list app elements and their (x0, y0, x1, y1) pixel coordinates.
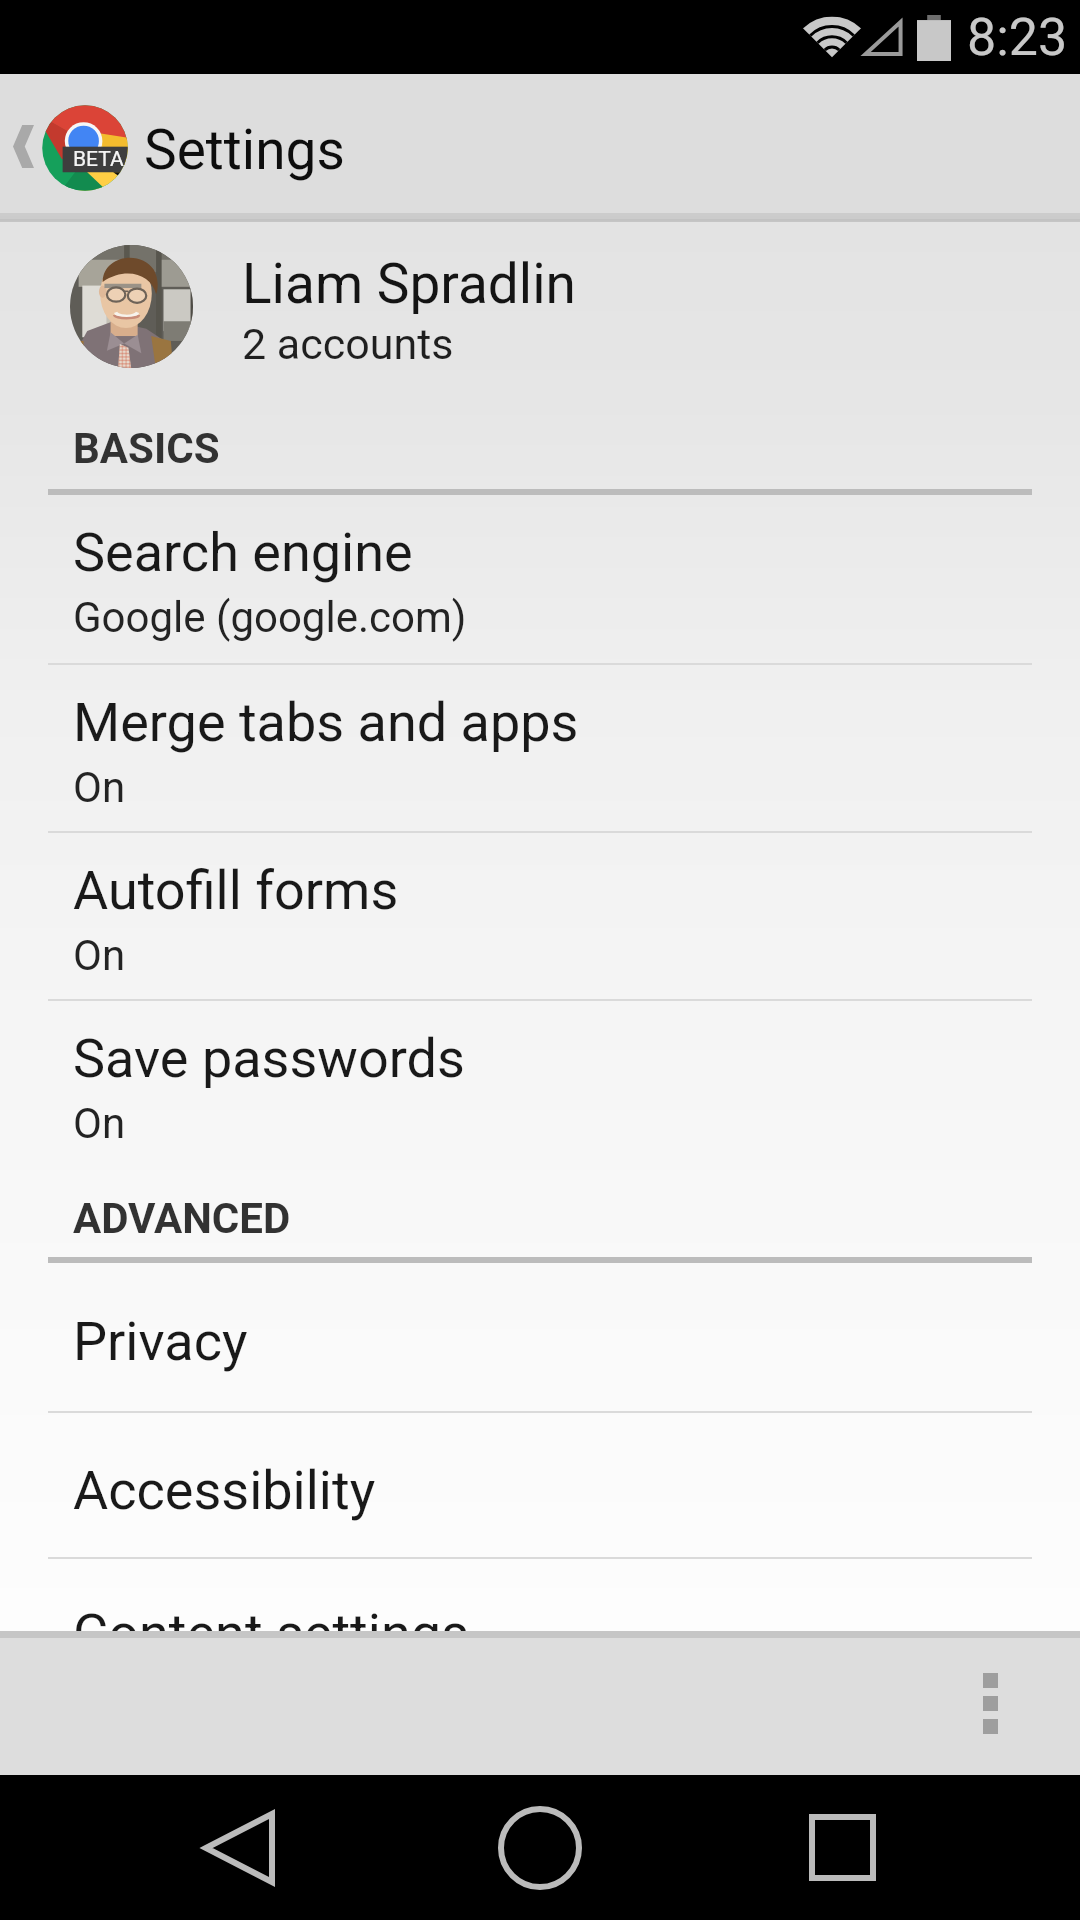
staticText: Save passwords (73, 1027, 465, 1090)
button[interactable]: Home (460, 1775, 620, 1920)
staticText: Content settings (73, 1602, 469, 1665)
staticText: ADVANCED (73, 1194, 291, 1243)
button[interactable]: Back (150, 1775, 310, 1920)
button[interactable]: Accessibility (0, 1413, 1080, 1557)
staticText: Accessibility (73, 1459, 376, 1522)
staticText: Google (google.com) (73, 593, 467, 642)
button[interactable]: More options (942, 1655, 1038, 1751)
button[interactable]: Liam Spradlin (0, 222, 1080, 405)
staticText: Autofill forms (73, 859, 399, 922)
staticText: On (73, 1099, 126, 1148)
button[interactable]: Merge tabs and apps (0, 665, 1080, 831)
staticText: 8:23 (967, 7, 1068, 68)
button[interactable]: Search engine (0, 495, 1080, 663)
staticText: On (73, 763, 126, 812)
staticText: BASICS (73, 424, 220, 473)
staticText: Liam Spradlin (242, 252, 576, 316)
staticText: Merge tabs and apps (73, 691, 579, 754)
button[interactable]: Autofill forms (0, 833, 1080, 999)
staticText: Privacy (73, 1310, 248, 1373)
staticText: Settings (144, 118, 345, 182)
staticText: Search engine (73, 521, 413, 584)
staticText: BETA (73, 147, 124, 172)
button[interactable]: Privacy (0, 1263, 1080, 1411)
staticText: 2 accounts (242, 319, 454, 369)
staticText: On (73, 931, 126, 980)
button[interactable]: Recent apps (770, 1775, 930, 1920)
button[interactable]: Save passwords (0, 1001, 1080, 1167)
button[interactable]: Content settings (0, 1559, 1080, 1707)
button[interactable]: Navigate up (0, 74, 138, 213)
